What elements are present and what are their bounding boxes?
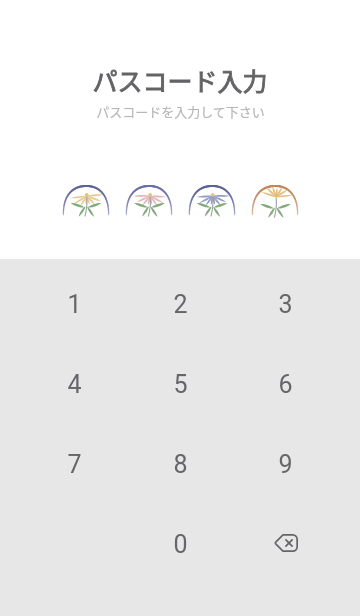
staticText: 0 bbox=[173, 530, 188, 559]
button[interactable]: 2 bbox=[140, 273, 220, 335]
button[interactable]: 9 bbox=[245, 433, 325, 495]
button[interactable]: 0 bbox=[140, 513, 220, 575]
staticText: パスコード入力 bbox=[92, 62, 268, 98]
button[interactable]: Delete bbox=[246, 512, 326, 574]
staticText: 7 bbox=[67, 450, 82, 479]
staticText: 8 bbox=[173, 450, 188, 479]
staticText: 6 bbox=[278, 370, 293, 399]
button[interactable]: 7 bbox=[34, 433, 114, 495]
staticText: 9 bbox=[278, 450, 293, 479]
staticText: 2 bbox=[173, 290, 188, 319]
staticText: パスコード入力 bbox=[92, 62, 268, 98]
button[interactable]: 4 bbox=[34, 353, 114, 415]
staticText: 5 bbox=[173, 370, 188, 399]
button[interactable]: 6 bbox=[245, 353, 325, 415]
staticText: パスコードを入力して下さい bbox=[96, 102, 265, 121]
button[interactable]: 3 bbox=[245, 273, 325, 335]
staticText: 4 bbox=[67, 370, 82, 399]
staticText: 1 bbox=[67, 290, 82, 319]
button[interactable]: 1 bbox=[34, 273, 114, 335]
button[interactable]: 5 bbox=[140, 353, 220, 415]
button[interactable]: 8 bbox=[140, 433, 220, 495]
staticText: 3 bbox=[278, 290, 293, 319]
